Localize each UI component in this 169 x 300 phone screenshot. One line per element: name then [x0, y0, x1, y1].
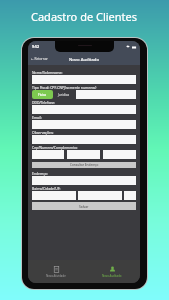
staticText: Cep/Numero/Complemento: — [32, 145, 78, 150]
staticText: Observações: — [32, 130, 54, 135]
button[interactable]: Novo Auditado — [84, 264, 140, 280]
staticText: Salvar — [79, 204, 89, 208]
staticText: Email: — [32, 115, 42, 120]
staticText: Novo Auditado — [69, 56, 100, 62]
staticText: Endereço: — [32, 171, 48, 176]
button[interactable]: Nova Atividade — [28, 264, 84, 280]
staticText: Fisica — [38, 93, 47, 97]
staticText: DDD/Telefone: — [32, 100, 56, 105]
staticText: Juridica — [58, 93, 70, 97]
other: Novo Auditado — [109, 266, 116, 273]
other: Nova Atividade — [53, 266, 60, 273]
staticText: ← Retornar — [31, 57, 48, 61]
staticText: Nova Atividade — [46, 274, 66, 278]
button[interactable]: Fisica — [32, 90, 53, 99]
button[interactable]: ← Retornar — [28, 55, 51, 63]
staticText: Cadastro de Clientes — [31, 9, 138, 24]
staticText: Tipo Fiscal: CPF-CNPJ(somente numeros) — [32, 85, 97, 90]
staticText: Novo Auditado — [102, 274, 122, 278]
button[interactable]: Juridica — [53, 90, 74, 99]
staticText: Nome/Sobrenome: — [32, 70, 63, 75]
staticText: Bairro/Cidade/UF: — [32, 186, 61, 191]
button[interactable]: Salvar — [32, 202, 136, 210]
staticText: Consultar Endereço — [70, 163, 99, 167]
staticText: 9:52 — [32, 44, 40, 49]
button[interactable]: Consultar Endereço — [32, 162, 136, 168]
